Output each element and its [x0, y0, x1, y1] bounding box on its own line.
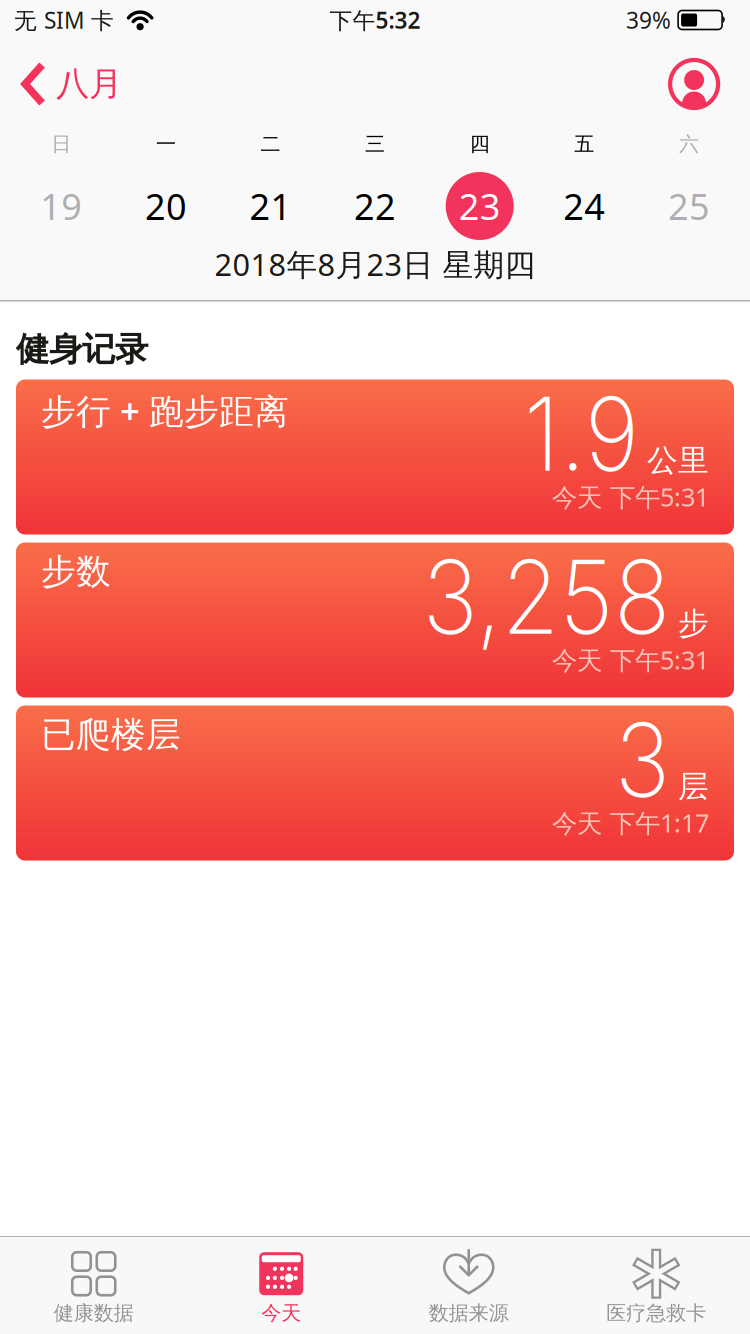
staticText: 日 — [51, 132, 71, 156]
staticText: 步数 — [41, 550, 111, 593]
staticText: 今天 下午5:31 — [552, 480, 709, 513]
staticText: 21 — [249, 182, 291, 230]
staticText: 健身记录 — [16, 329, 148, 370]
button[interactable]: 22 — [323, 170, 427, 242]
button[interactable]: 今天 — [187, 1249, 375, 1325]
staticText: 步 — [678, 605, 709, 642]
staticText: 层 — [678, 768, 709, 805]
staticText: 六 — [679, 132, 699, 156]
staticText: 今天 下午5:31 — [552, 643, 709, 676]
button[interactable]: 24 — [532, 170, 637, 242]
staticText: 三 — [365, 132, 385, 156]
staticText: 今天 下午1:17 — [552, 806, 709, 839]
staticText: 23 — [459, 182, 501, 230]
staticText: 20 — [145, 182, 187, 230]
button[interactable]: 步行 + 跑步距离 — [16, 379, 734, 534]
button[interactable]: 已爬楼层 — [16, 705, 734, 860]
button[interactable]: 23 — [427, 170, 532, 242]
staticText: 今天 — [261, 1301, 301, 1325]
button[interactable]: 数据来源 — [375, 1249, 562, 1325]
staticText: 22 — [354, 182, 396, 230]
staticText: 19 — [40, 182, 82, 230]
staticText: 下午5:32 — [330, 5, 421, 35]
staticText: 25 — [668, 182, 710, 230]
staticText: 1.9 — [514, 372, 639, 495]
button[interactable]: 健康数据 — [0, 1249, 187, 1325]
staticText: 3 — [610, 698, 670, 821]
staticText: 24 — [563, 182, 605, 230]
staticText: 二 — [260, 132, 280, 156]
button[interactable]: 20 — [114, 170, 218, 242]
staticText: 已爬楼层 — [41, 713, 181, 756]
button[interactable]: 21 — [218, 170, 323, 242]
staticText: 医疗急救卡 — [606, 1301, 706, 1325]
button[interactable]: 步数 — [16, 542, 734, 697]
staticText: 五 — [574, 132, 594, 156]
button[interactable]: 25 — [637, 170, 741, 242]
staticText: 3,258 — [401, 535, 670, 658]
staticText: 四 — [470, 132, 490, 156]
staticText: 2018年8月23日 星期四 — [215, 244, 536, 284]
staticText: 无 SIM 卡 — [14, 5, 114, 35]
staticText: 一 — [156, 132, 176, 156]
staticText: 八月 — [56, 63, 122, 104]
staticText: 数据来源 — [429, 1301, 509, 1325]
staticText: 健康数据 — [54, 1301, 134, 1325]
button[interactable] — [670, 60, 750, 108]
staticText: 39% — [626, 5, 671, 35]
button[interactable]: 医疗急救卡 — [562, 1249, 750, 1325]
button[interactable]: 19 — [9, 170, 114, 242]
staticText: 步行 + 跑步距离 — [41, 387, 289, 433]
staticText: 公里 — [647, 442, 709, 479]
button[interactable]: 八月 — [0, 63, 122, 105]
